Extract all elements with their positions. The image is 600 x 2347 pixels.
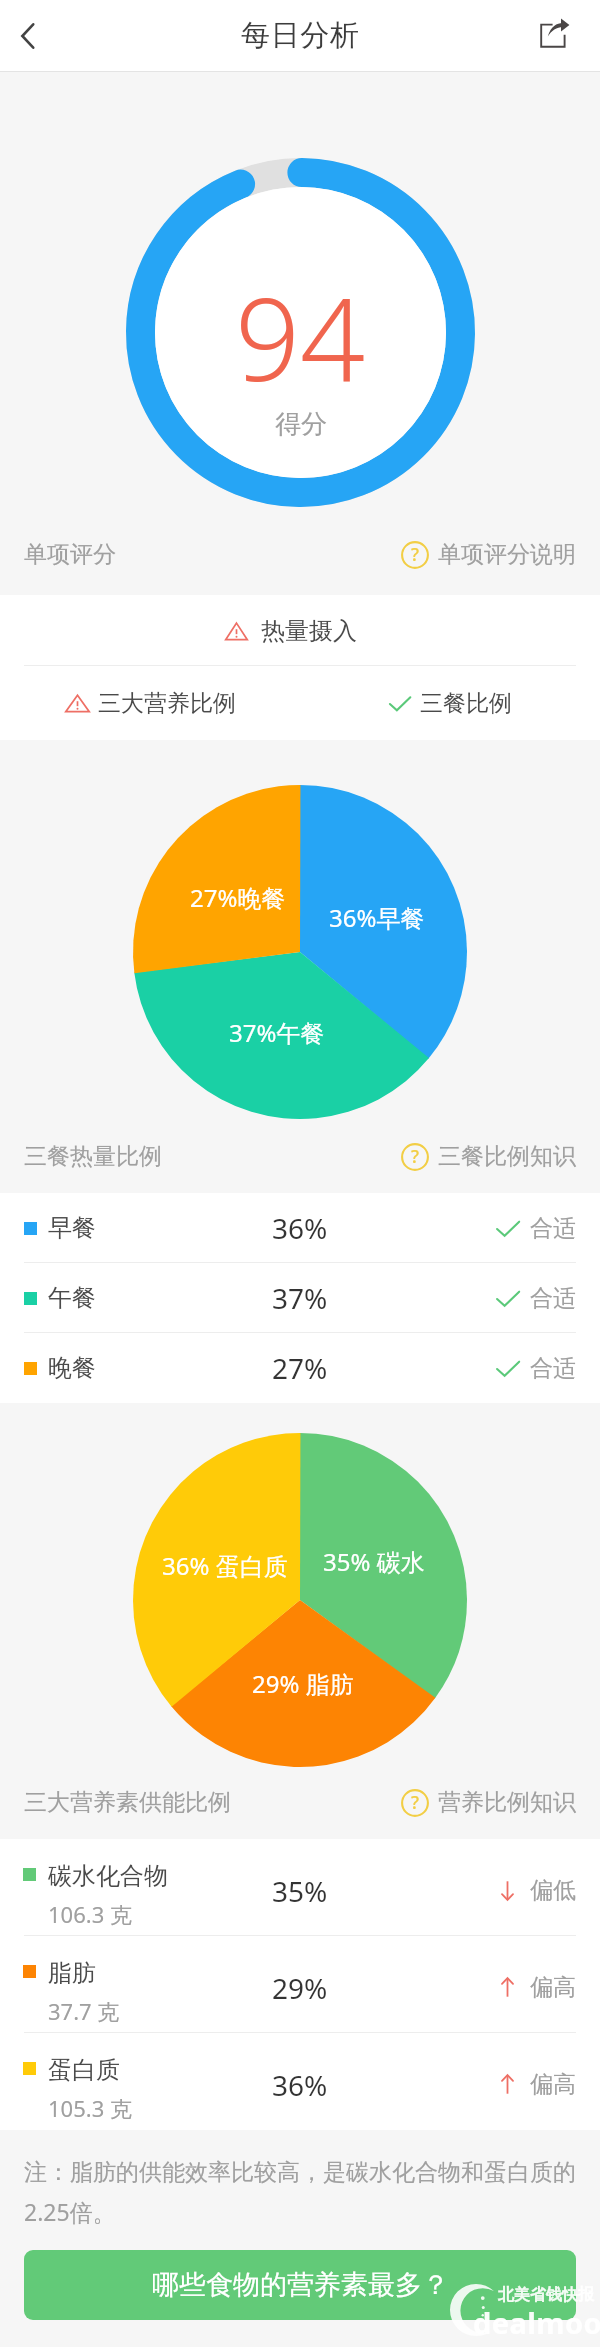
staticText: 得分 — [275, 408, 327, 441]
button[interactable]: ? — [401, 1142, 576, 1171]
staticText: 35% — [272, 1872, 328, 1910]
staticText: 37%午餐 — [229, 1016, 325, 1049]
staticText: 36% 蛋白质 — [162, 1549, 288, 1582]
staticText: 偏低 — [530, 1876, 576, 1905]
staticText: 36% — [272, 2066, 328, 2104]
button[interactable]: 哪些食物的营养素最多？ — [24, 2250, 576, 2320]
staticText: 36%早餐 — [329, 901, 425, 934]
staticText: 27% — [272, 1349, 328, 1387]
button[interactable]: 热量摄入 — [0, 595, 600, 666]
staticText: 热量摄入 — [261, 616, 357, 646]
staticText: 94 — [235, 259, 366, 414]
staticText: 营养比例知识 — [438, 1788, 576, 1817]
staticText: ? — [411, 1144, 420, 1168]
button[interactable]: 蛋白质 — [0, 2033, 600, 2130]
staticText: 碳水化合物 — [48, 1861, 168, 1891]
staticText: 三大营养比例 — [98, 689, 236, 718]
button[interactable]: 午餐 — [0, 1263, 600, 1333]
staticText: 合适 — [530, 1354, 576, 1383]
staticText: 27%晚餐 — [190, 881, 286, 914]
staticText: 偏高 — [530, 1973, 576, 2002]
staticText: 偏高 — [530, 2070, 576, 2099]
staticText: ? — [411, 542, 420, 566]
staticText: ? — [411, 1790, 420, 1814]
staticText: 三大营养素供能比例 — [24, 1788, 231, 1817]
button[interactable]: 晚餐 — [0, 1333, 600, 1403]
staticText: 37% — [272, 1279, 328, 1317]
staticText: 早餐 — [48, 1213, 96, 1243]
staticText: 105.3 克 — [48, 2093, 132, 2123]
button[interactable]: Share — [523, 1, 587, 65]
button[interactable]: ? — [401, 540, 576, 569]
staticText: 每日分析 — [241, 17, 360, 54]
staticText: 106.3 克 — [48, 1899, 132, 1929]
staticText: 三餐比例 — [420, 689, 512, 718]
staticText: dealmoon — [473, 2303, 600, 2342]
staticText: 午餐 — [48, 1283, 96, 1313]
staticText: 合适 — [530, 1284, 576, 1313]
staticText: 蛋白质 — [48, 2055, 120, 2085]
staticText: 哪些食物的营养素最多？ — [152, 2268, 449, 2302]
staticText: 37.7 克 — [48, 1996, 120, 2026]
staticText: 三餐热量比例 — [24, 1142, 162, 1171]
staticText: 29% 脂肪 — [252, 1667, 354, 1700]
button[interactable]: Back — [0, 4, 59, 68]
staticText: 36% — [272, 1209, 328, 1247]
staticText: 单项评分 — [24, 540, 116, 569]
button[interactable]: 碳水化合物 — [0, 1839, 600, 1936]
button[interactable]: 脂肪 — [0, 1936, 600, 2033]
button[interactable]: 三餐比例 — [300, 666, 600, 740]
staticText: 晚餐 — [48, 1353, 96, 1383]
staticText: 35% 碳水 — [323, 1545, 425, 1578]
staticText: 北美省钱快报 — [498, 2285, 594, 2305]
staticText: 脂肪 — [48, 1958, 96, 1988]
button[interactable]: ? — [401, 1788, 576, 1817]
staticText: 单项评分说明 — [438, 540, 576, 569]
button[interactable]: 三大营养比例 — [0, 666, 300, 740]
staticText: 29% — [272, 1969, 328, 2007]
staticText: 注：脂肪的供能效率比较高，是碳水化合物和蛋白质的2.25倍。 — [24, 2158, 576, 2228]
button[interactable]: 早餐 — [0, 1193, 600, 1263]
staticText: 合适 — [530, 1214, 576, 1243]
staticText: 三餐比例知识 — [438, 1142, 576, 1171]
